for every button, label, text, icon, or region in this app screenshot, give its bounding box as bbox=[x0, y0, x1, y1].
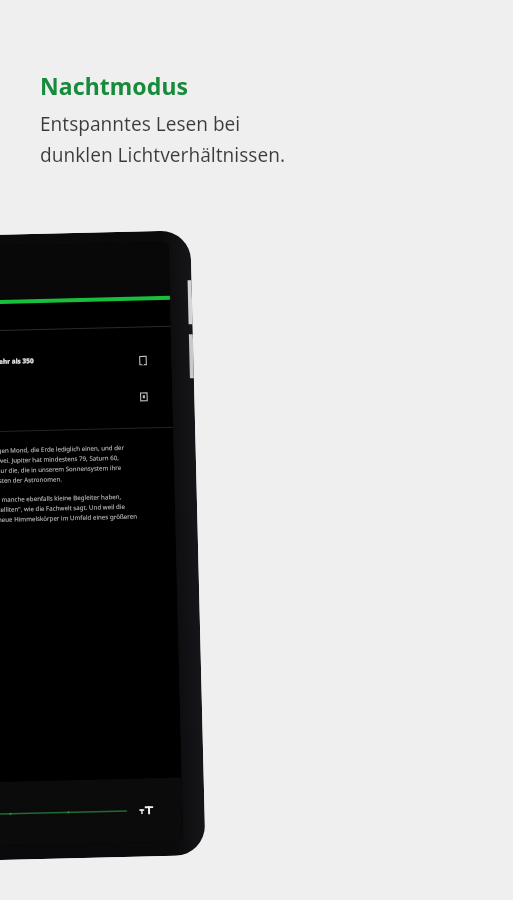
staticText: Merkur und Venus haben keinen einzigen M… bbox=[0, 442, 140, 488]
staticText: dunklen Lichtverhältnissen. bbox=[40, 142, 285, 168]
button[interactable]: Bookmark bbox=[135, 353, 150, 367]
button[interactable] bbox=[0, 801, 127, 827]
staticText: Hinzu kommen die Monde, von denen manche… bbox=[0, 491, 142, 537]
staticText: Mittlerweile haben Astronomen mehr als 3… bbox=[0, 356, 35, 369]
button[interactable]: Volume up bbox=[187, 280, 193, 324]
button[interactable]: Volume down bbox=[189, 334, 194, 378]
staticText: Entspanntes Lesen bei bbox=[40, 111, 241, 137]
button[interactable]: Text size bbox=[136, 800, 157, 821]
staticText: Nachtmodus bbox=[40, 70, 189, 101]
button[interactable]: Share bbox=[136, 389, 150, 403]
